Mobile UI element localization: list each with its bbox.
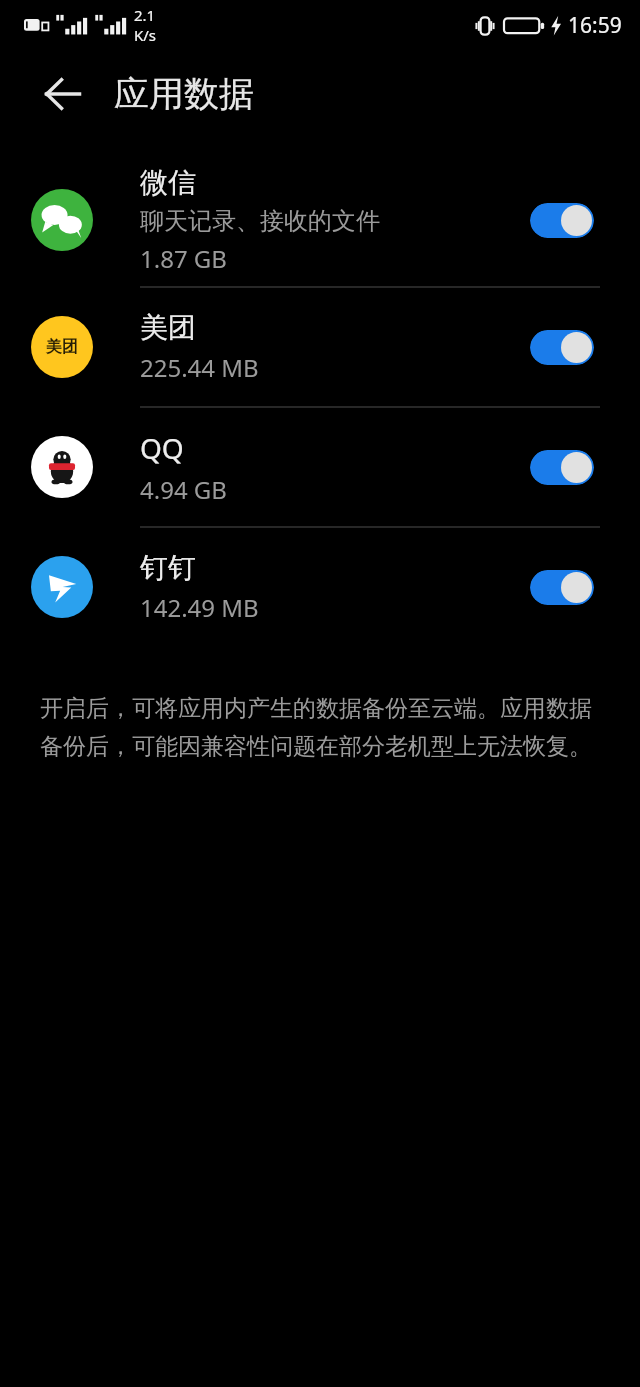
staticText: 142.49 MB [140,591,259,624]
staticText: QQ [140,429,184,467]
staticText: 4.94 GB [140,473,227,506]
staticText: 2.1 [134,5,156,25]
staticText: 聊天记录、接收的文件 [140,206,380,236]
button[interactable]: Toggle backup for 美团 [530,330,594,365]
button[interactable]: Toggle backup for 微信 [530,203,594,238]
button[interactable]: 美团 [0,288,640,406]
staticText: 225.44 MB [140,351,259,384]
button[interactable]: 钉钉 [0,528,640,646]
staticText: 微信 [140,165,196,200]
button[interactable]: Toggle backup for 钉钉 [530,570,594,605]
staticText: 钉钉 [140,550,196,585]
staticText: 开启后，可将应用内产生的数据备份至云端。应用数据备份后，可能因兼容性问题在部分老… [40,694,606,760]
staticText: 美团 [46,337,78,357]
button[interactable]: QQ [0,408,640,526]
staticText: 1.87 GB [140,242,227,275]
staticText: 16:59 [568,11,622,40]
staticText: 应用数据 [114,72,254,116]
staticText: 美团 [140,310,196,345]
button[interactable]: Back [28,59,98,129]
staticText: K/s [134,25,157,45]
button[interactable]: 微信 [0,154,640,286]
button[interactable]: Toggle backup for QQ [530,450,594,485]
